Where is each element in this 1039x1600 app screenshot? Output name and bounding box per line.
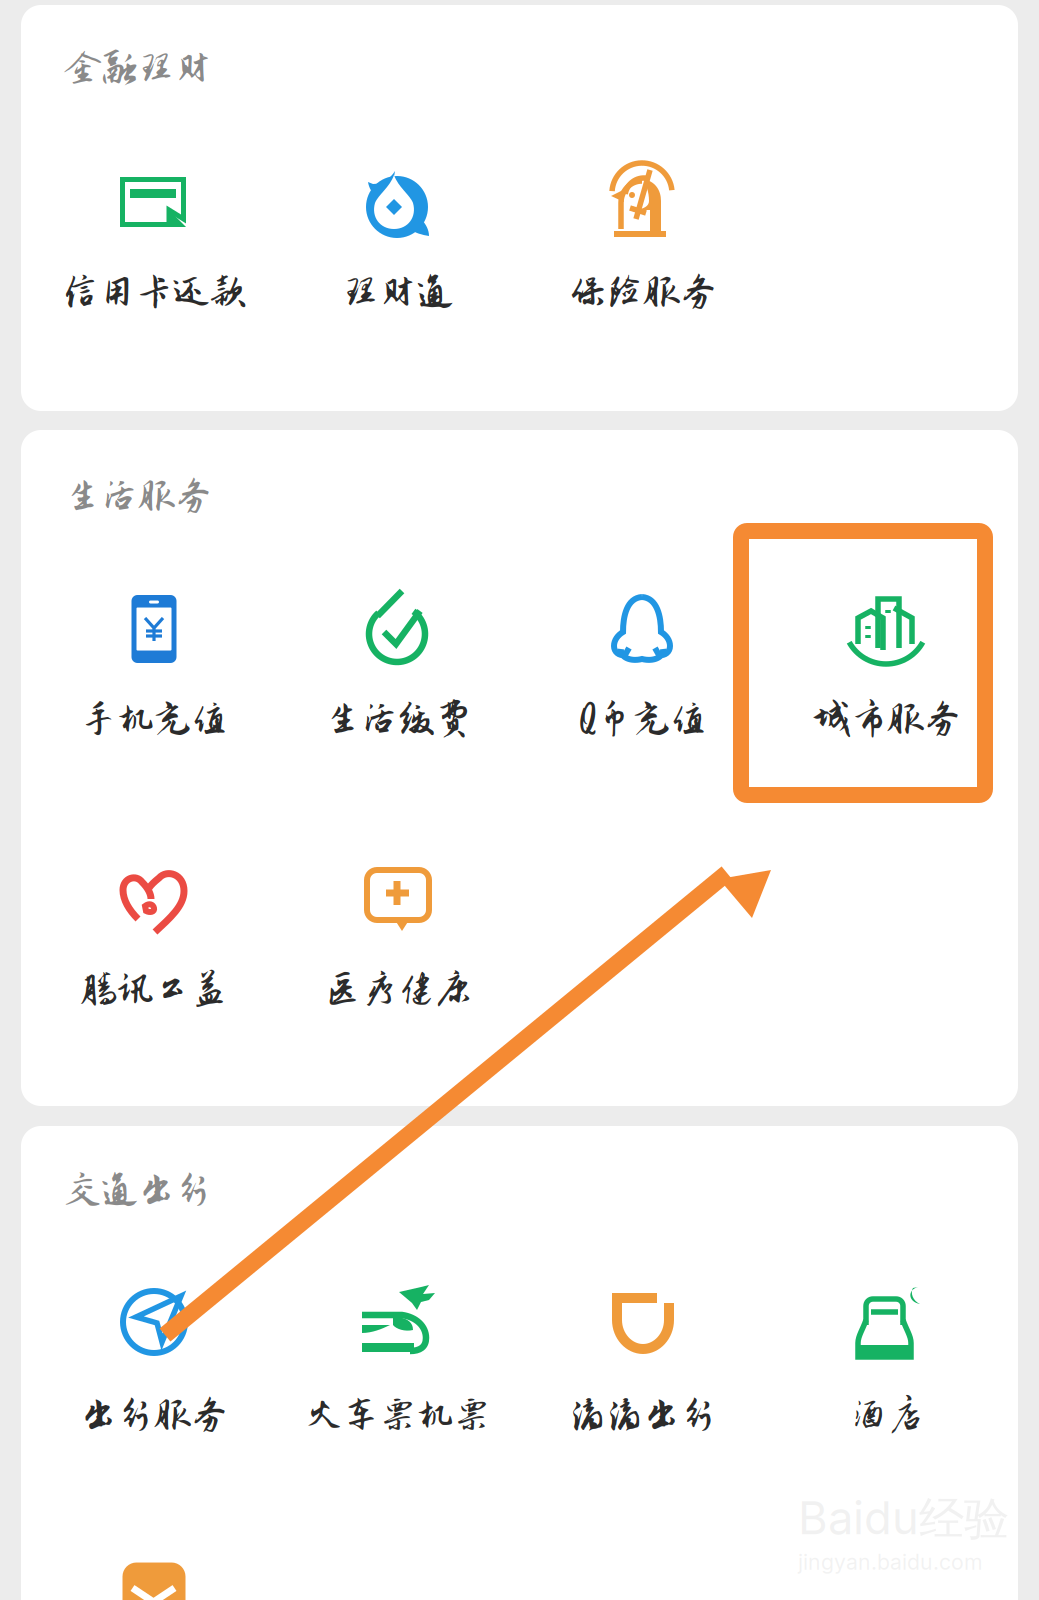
staticText: 生活服务 — [64, 475, 212, 517]
staticText: 腾讯公益 — [80, 968, 228, 1010]
staticText: 酒店 — [850, 1394, 924, 1436]
staticText: 保险服务 — [569, 271, 717, 313]
staticText: 滴滴出行 — [569, 1394, 717, 1436]
staticText: Q币充值 — [579, 698, 707, 740]
staticText: 城市服务 — [813, 698, 961, 740]
staticText: 火车票机票 — [305, 1394, 490, 1436]
staticText: Baidu经验 — [798, 1490, 1009, 1548]
staticText: 理财通 — [342, 271, 453, 313]
staticText: 手机充值 — [80, 698, 228, 740]
staticText: 金融理财 — [64, 47, 212, 89]
staticText: 交通出行 — [64, 1169, 212, 1211]
staticText: 医疗健康 — [324, 968, 472, 1010]
staticText: 出行服务 — [80, 1394, 228, 1436]
staticText: jingyan.baidu.com — [798, 1549, 983, 1575]
staticText: 生活缴费 — [324, 698, 472, 740]
staticText: 信用卡还款 — [61, 271, 246, 313]
